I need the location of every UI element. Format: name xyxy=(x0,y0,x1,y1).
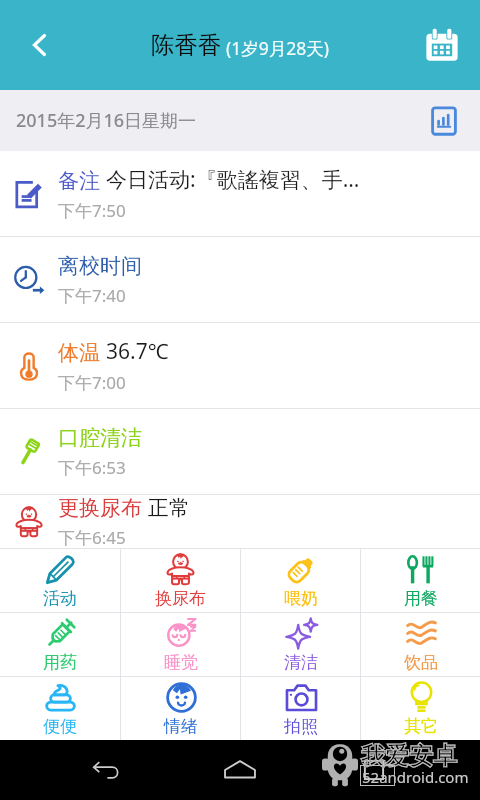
button[interactable]: 情绪 xyxy=(121,677,240,740)
staticText: 离校时间 xyxy=(58,253,142,279)
staticText: 备注 xyxy=(58,168,100,194)
staticText: 更换尿布 xyxy=(58,495,142,521)
staticText: 今日活动:『歌謠複習、手… xyxy=(106,165,360,194)
staticText: 正常 xyxy=(148,495,190,521)
button[interactable]: 用药 xyxy=(0,613,120,676)
staticText: 其它 xyxy=(404,716,438,737)
button[interactable]: 其它 xyxy=(361,677,480,740)
staticText: 下午6:53 xyxy=(58,456,126,479)
button[interactable]: 拍照 xyxy=(241,677,360,740)
staticText: 睡觉 xyxy=(164,652,198,673)
staticText: 饮品 xyxy=(404,652,438,673)
button[interactable]: 饮品 xyxy=(361,613,480,676)
button[interactable]: 备注 xyxy=(0,151,480,236)
staticText: 陈香香 xyxy=(151,30,222,60)
staticText: 下午7:00 xyxy=(58,371,126,394)
button[interactable]: Home xyxy=(212,742,268,798)
staticText: 口腔清洁 xyxy=(58,425,142,451)
staticText: 活动 xyxy=(43,588,77,609)
staticText: 2015年2月16日星期一 xyxy=(16,108,197,133)
button[interactable]: 体温 xyxy=(0,323,480,408)
staticText: 拍照 xyxy=(284,716,318,737)
staticText: 下午7:40 xyxy=(58,284,126,307)
staticText: 我爱安卓 xyxy=(361,741,457,771)
button[interactable]: 口腔清洁 xyxy=(0,409,480,494)
staticText: 清洁 xyxy=(284,652,318,673)
staticText: 52android.com xyxy=(362,767,469,787)
button[interactable]: Recents xyxy=(346,742,402,798)
staticText: 体温 xyxy=(58,340,100,366)
staticText: 用药 xyxy=(43,652,77,673)
staticText: 我爱安卓 xyxy=(361,741,457,771)
button[interactable]: 便便 xyxy=(0,677,120,740)
button[interactable]: 喂奶 xyxy=(241,549,360,612)
staticText: 36.7℃ xyxy=(106,337,169,366)
staticText: 换尿布 xyxy=(155,588,206,609)
button[interactable]: Back xyxy=(78,742,134,798)
button[interactable]: Calendar xyxy=(416,19,468,71)
button[interactable]: 用餐 xyxy=(361,549,480,612)
button[interactable]: 睡觉 xyxy=(121,613,240,676)
button[interactable]: Statistics xyxy=(422,99,466,143)
button[interactable]: 活动 xyxy=(0,549,120,612)
button[interactable]: 清洁 xyxy=(241,613,360,676)
staticText: 情绪 xyxy=(164,716,198,737)
button[interactable]: Back xyxy=(14,19,66,71)
staticText: 下午7:50 xyxy=(58,199,126,222)
staticText: 下午6:45 xyxy=(58,526,126,548)
staticText: (1岁9月28天) xyxy=(226,36,330,60)
button[interactable]: 离校时间 xyxy=(0,237,480,322)
staticText: 便便 xyxy=(43,716,77,737)
staticText: 喂奶 xyxy=(284,588,318,609)
button[interactable]: 更换尿布 xyxy=(0,495,480,548)
staticText: 用餐 xyxy=(404,588,438,609)
button[interactable]: 换尿布 xyxy=(121,549,240,612)
